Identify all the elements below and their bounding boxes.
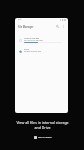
button[interactable] (15, 48, 68, 57)
button[interactable] (15, 33, 68, 45)
staticText: Google account files (24, 50, 42, 52)
staticText: 24.5 GB of 64 GB used (24, 39, 43, 41)
staticText: File Manager (18, 25, 34, 28)
button[interactable]: More options (61, 24, 66, 29)
staticText: Files by Google (38, 136, 52, 139)
staticText: and Drive (34, 125, 51, 130)
staticText: Drive (24, 48, 29, 51)
staticText: 9:41 (18, 18, 22, 20)
button[interactable]: Files by Google (34, 136, 52, 139)
button[interactable]: File Manager (18, 25, 34, 28)
button[interactable]: Search (55, 24, 60, 29)
staticText: Internal storage (24, 37, 40, 40)
staticText: View all files in internal storage (16, 120, 69, 125)
